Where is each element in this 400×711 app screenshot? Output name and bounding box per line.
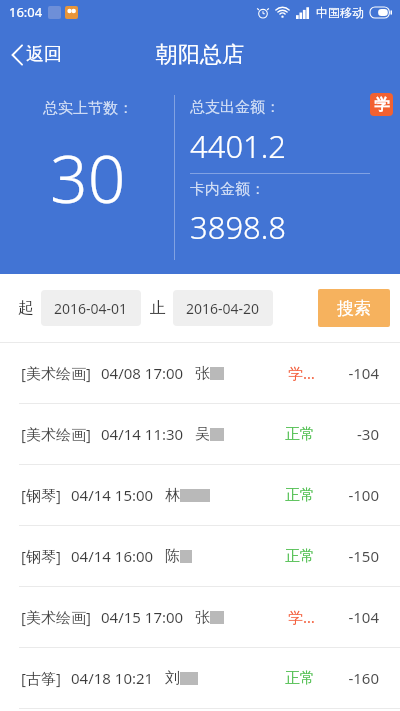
- staticText: 卡内金额：: [190, 180, 265, 199]
- staticText: 刘: [165, 669, 180, 688]
- staticText: [美术绘画]: [21, 607, 91, 627]
- staticText: 04/14 16:00: [71, 546, 154, 566]
- staticText: 04/14 11:30: [101, 424, 184, 444]
- button[interactable]: 2016-04-01: [41, 290, 141, 326]
- staticText: 返回: [26, 43, 62, 66]
- button[interactable]: [钢琴]: [0, 526, 400, 586]
- staticText: 04/14 15:00: [71, 485, 154, 505]
- button[interactable]: [钢琴]: [0, 465, 400, 525]
- button[interactable]: 2016-04-20: [173, 290, 273, 326]
- staticText: 张: [195, 608, 210, 627]
- staticText: -104: [348, 607, 379, 627]
- button[interactable]: 搜索: [318, 289, 390, 327]
- staticText: 正常: [285, 486, 315, 505]
- button[interactable]: [美术绘画]: [0, 587, 400, 647]
- staticText: 林: [165, 486, 180, 505]
- staticText: 正常: [285, 669, 315, 688]
- staticText: [钢琴]: [21, 485, 61, 505]
- staticText: 学…: [288, 607, 315, 627]
- staticText: 30: [50, 132, 126, 222]
- staticText: 16:04: [9, 3, 43, 21]
- staticText: 总支出金额：: [190, 98, 280, 117]
- staticText: [古筝]: [21, 668, 61, 688]
- staticText: 3898.8: [190, 206, 287, 248]
- staticText: 04/18 10:21: [71, 668, 154, 688]
- staticText: 张: [195, 364, 210, 383]
- staticText: -150: [348, 546, 379, 566]
- staticText: 吴: [195, 425, 210, 444]
- button[interactable]: 学: [370, 93, 393, 116]
- staticText: [美术绘画]: [21, 424, 91, 444]
- staticText: -30: [357, 424, 379, 444]
- staticText: 正常: [285, 547, 315, 566]
- staticText: [钢琴]: [21, 546, 61, 566]
- staticText: 中国移动: [316, 5, 364, 20]
- staticText: 起: [18, 298, 34, 318]
- staticText: -100: [348, 485, 379, 505]
- staticText: -160: [348, 668, 379, 688]
- button[interactable]: [美术绘画]: [0, 343, 400, 403]
- staticText: 学: [374, 95, 390, 115]
- staticText: 4401.2: [190, 125, 287, 167]
- staticText: 04/08 17:00: [101, 363, 184, 383]
- staticText: 朝阳总店: [156, 41, 244, 69]
- staticText: [美术绘画]: [21, 363, 91, 383]
- button[interactable]: [古筝]: [0, 648, 400, 708]
- button[interactable]: [美术绘画]: [0, 404, 400, 464]
- staticText: -104: [348, 363, 379, 383]
- staticText: 止: [150, 298, 166, 318]
- button[interactable]: 返回: [0, 24, 76, 85]
- staticText: 04/15 17:00: [101, 607, 184, 627]
- staticText: 学…: [288, 363, 315, 383]
- staticText: 2016-04-20: [186, 299, 260, 318]
- staticText: 陈: [165, 547, 180, 566]
- staticText: 搜索: [337, 298, 371, 319]
- staticText: 正常: [285, 425, 315, 444]
- staticText: 2016-04-01: [54, 299, 128, 318]
- staticText: 总实上节数：: [43, 99, 133, 118]
